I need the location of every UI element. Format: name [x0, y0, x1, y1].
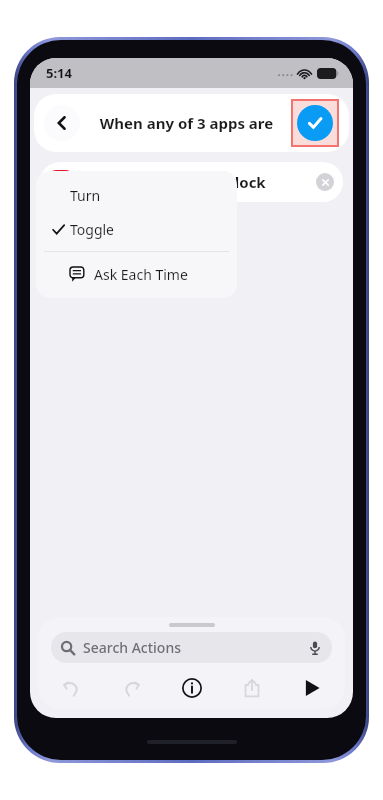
- button[interactable]: Info: [175, 671, 209, 705]
- button[interactable]: Toggle: [36, 212, 237, 246]
- button[interactable]: Turn: [36, 178, 237, 212]
- other: Voice search: [308, 641, 322, 655]
- staticText: Turn: [70, 186, 101, 205]
- staticText: 5:14: [46, 64, 72, 82]
- staticText: Search Actions: [83, 638, 181, 657]
- button[interactable]: Undo: [54, 671, 88, 705]
- button[interactable]: Run: [295, 671, 329, 705]
- button[interactable]: Done: [291, 99, 339, 147]
- staticText: orientation lock: [146, 172, 266, 192]
- staticText: Ask Each Time: [94, 265, 188, 284]
- button[interactable]: Ask Each Time: [36, 257, 237, 291]
- button[interactable]: Toggle: [40, 162, 343, 202]
- staticText: When any of 3 apps are op...: [86, 113, 287, 133]
- button[interactable]: Share: [235, 671, 269, 705]
- button[interactable]: Remove action: [316, 173, 334, 191]
- button[interactable]: Search Actions: [51, 632, 332, 663]
- staticText: Toggle: [70, 220, 115, 239]
- button[interactable]: Redo: [114, 671, 148, 705]
- button[interactable]: Back: [44, 105, 80, 141]
